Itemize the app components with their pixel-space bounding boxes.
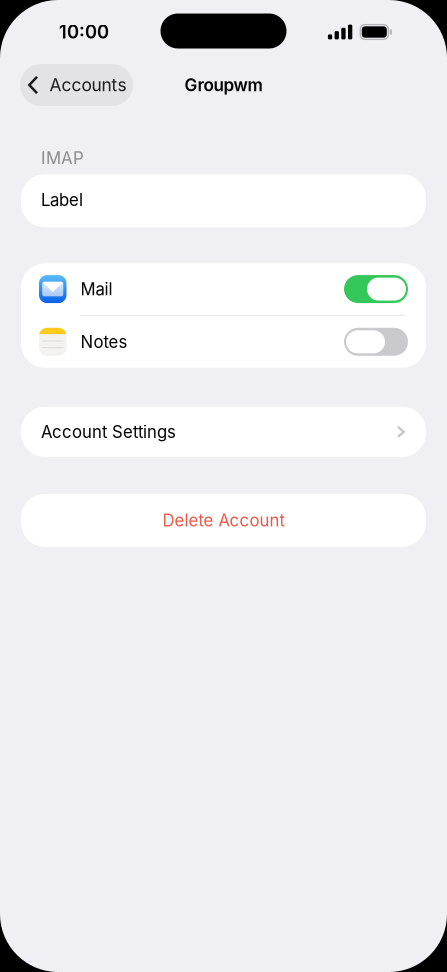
button[interactable]: Mail	[21, 263, 426, 315]
staticText: 10:00	[59, 21, 109, 43]
button[interactable]: Delete Account	[21, 494, 426, 547]
staticText: Account Settings	[41, 422, 176, 442]
staticText: IMAP	[41, 148, 84, 168]
button[interactable]: Notes	[21, 316, 426, 368]
staticText: Notes	[80, 332, 127, 352]
button[interactable]: Account Settings	[21, 407, 426, 457]
staticText: Mail	[80, 279, 112, 299]
staticText: Accounts	[49, 74, 126, 95]
staticText: Label	[41, 190, 83, 210]
staticText: Groupwm	[184, 75, 262, 95]
button[interactable]: Accounts	[20, 64, 133, 106]
staticText: Delete Account	[162, 510, 284, 530]
